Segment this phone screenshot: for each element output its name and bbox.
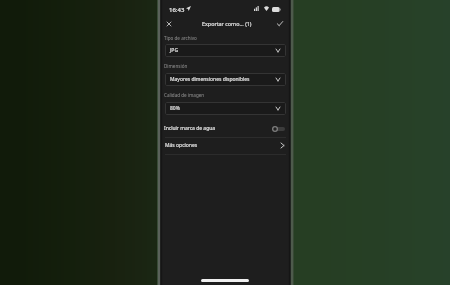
staticText: Mayores dimensiones disponibles <box>170 76 250 83</box>
staticText: JPG <box>170 47 179 54</box>
staticText: Dimensión <box>164 63 188 69</box>
staticText: Más opciones <box>165 142 198 149</box>
button[interactable]: JPG <box>165 44 286 57</box>
button[interactable]: Cerrar <box>162 17 175 30</box>
staticText: Incluir marca de agua <box>164 125 216 132</box>
staticText: 80% <box>170 105 180 112</box>
button[interactable]: Confirmar <box>273 17 286 30</box>
staticText: 16:43 <box>169 6 185 14</box>
button[interactable]: Mayores dimensiones disponibles <box>165 73 286 86</box>
staticText: Exportar como... (1) <box>202 20 252 27</box>
button[interactable]: Más opciones <box>160 137 290 154</box>
button[interactable]: 80% <box>165 102 286 115</box>
button[interactable]: Incluir marca de agua <box>160 119 290 138</box>
staticText: Tipo de archivo <box>164 35 197 41</box>
staticText: Calidad de imagen <box>164 92 205 98</box>
